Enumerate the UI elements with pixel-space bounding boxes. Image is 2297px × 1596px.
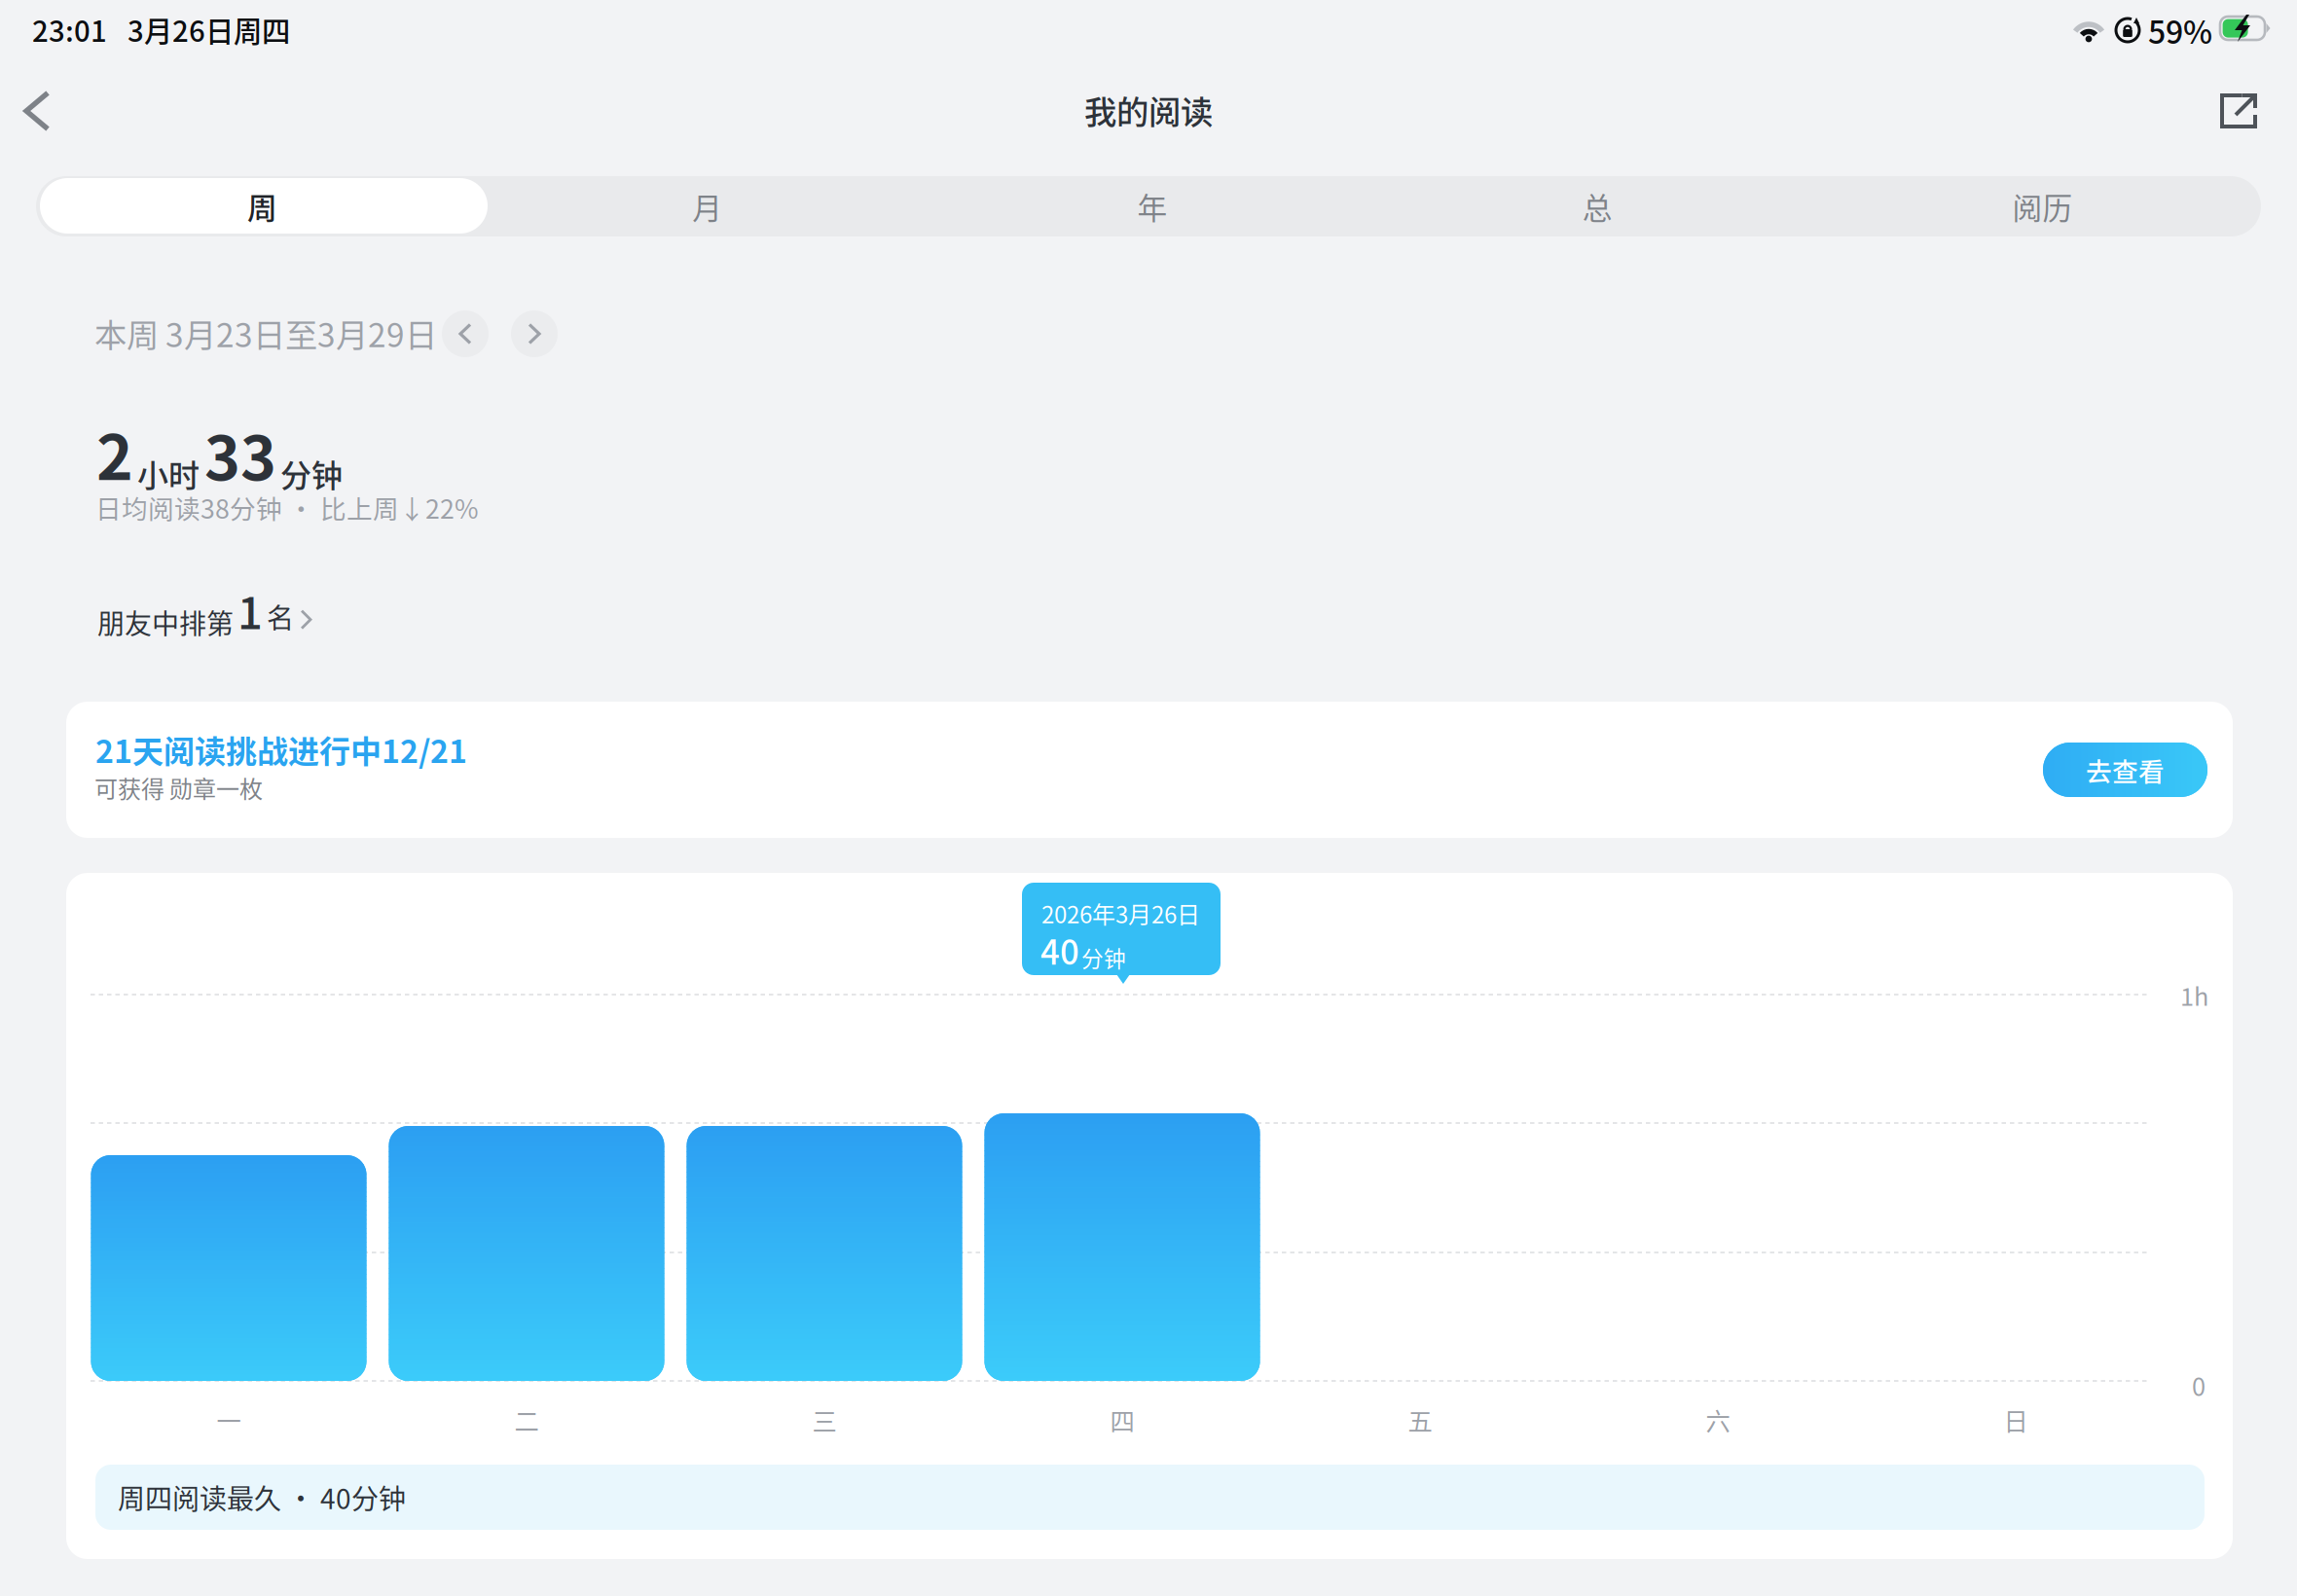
staticText: 三: [812, 1402, 837, 1438]
staticText: 周: [247, 185, 277, 228]
staticText: 朋友中排第: [97, 602, 234, 642]
button[interactable]: 周: [36, 176, 481, 236]
button[interactable]: 分享: [2209, 83, 2268, 139]
staticText: 去查看: [2086, 751, 2165, 789]
staticText: 1h: [2180, 977, 2208, 1013]
staticText: 2: [96, 408, 133, 498]
staticText: 年: [1137, 185, 1167, 228]
staticText: 分钟: [280, 451, 343, 496]
button[interactable]: 去查看: [2043, 743, 2207, 797]
staticText: 二: [514, 1402, 539, 1438]
staticText: 小时: [137, 451, 200, 496]
staticText: 我的阅读: [1084, 87, 1213, 134]
button[interactable]: 21天阅读挑战进行中12/21: [66, 702, 2233, 838]
button[interactable]: 年: [926, 176, 1371, 236]
button[interactable]: 阅历: [1816, 176, 2261, 236]
staticText: 月: [692, 185, 722, 228]
button[interactable]: 总: [1371, 176, 1816, 236]
staticText: 21天阅读挑战进行中12/21: [95, 727, 467, 772]
staticText: 59%: [2148, 8, 2212, 53]
button[interactable]: 下一周: [511, 310, 558, 357]
staticText: 一: [217, 1402, 241, 1438]
staticText: 33: [204, 410, 276, 498]
staticText: 四: [1110, 1402, 1134, 1438]
button[interactable]: 返回: [5, 83, 69, 139]
staticText: 五: [1408, 1402, 1432, 1438]
staticText: 23:01 3月26日周四: [32, 9, 290, 50]
staticText: 40: [1040, 925, 1079, 974]
staticText: 2026年3月26日: [1041, 896, 1200, 930]
button[interactable]: 月: [481, 176, 926, 236]
staticText: 1: [237, 578, 263, 642]
staticText: 六: [1706, 1402, 1730, 1438]
staticText: 分钟: [1081, 941, 1126, 973]
staticText: 日均阅读38分钟 · 比上周↓22%: [95, 489, 479, 526]
staticText: 本周 3月23日至3月29日: [94, 309, 437, 356]
staticText: 名: [267, 597, 294, 636]
button[interactable]: 朋友中排第: [97, 578, 307, 642]
button[interactable]: 上一周: [442, 310, 489, 357]
staticText: 阅历: [2012, 185, 2073, 228]
staticText: 周四阅读最久 · 40分钟: [118, 1477, 406, 1517]
staticText: 可获得 勋章一枚: [94, 771, 263, 805]
staticText: 日: [2004, 1402, 2028, 1438]
staticText: 0: [2192, 1367, 2206, 1403]
staticText: 总: [1582, 185, 1612, 228]
